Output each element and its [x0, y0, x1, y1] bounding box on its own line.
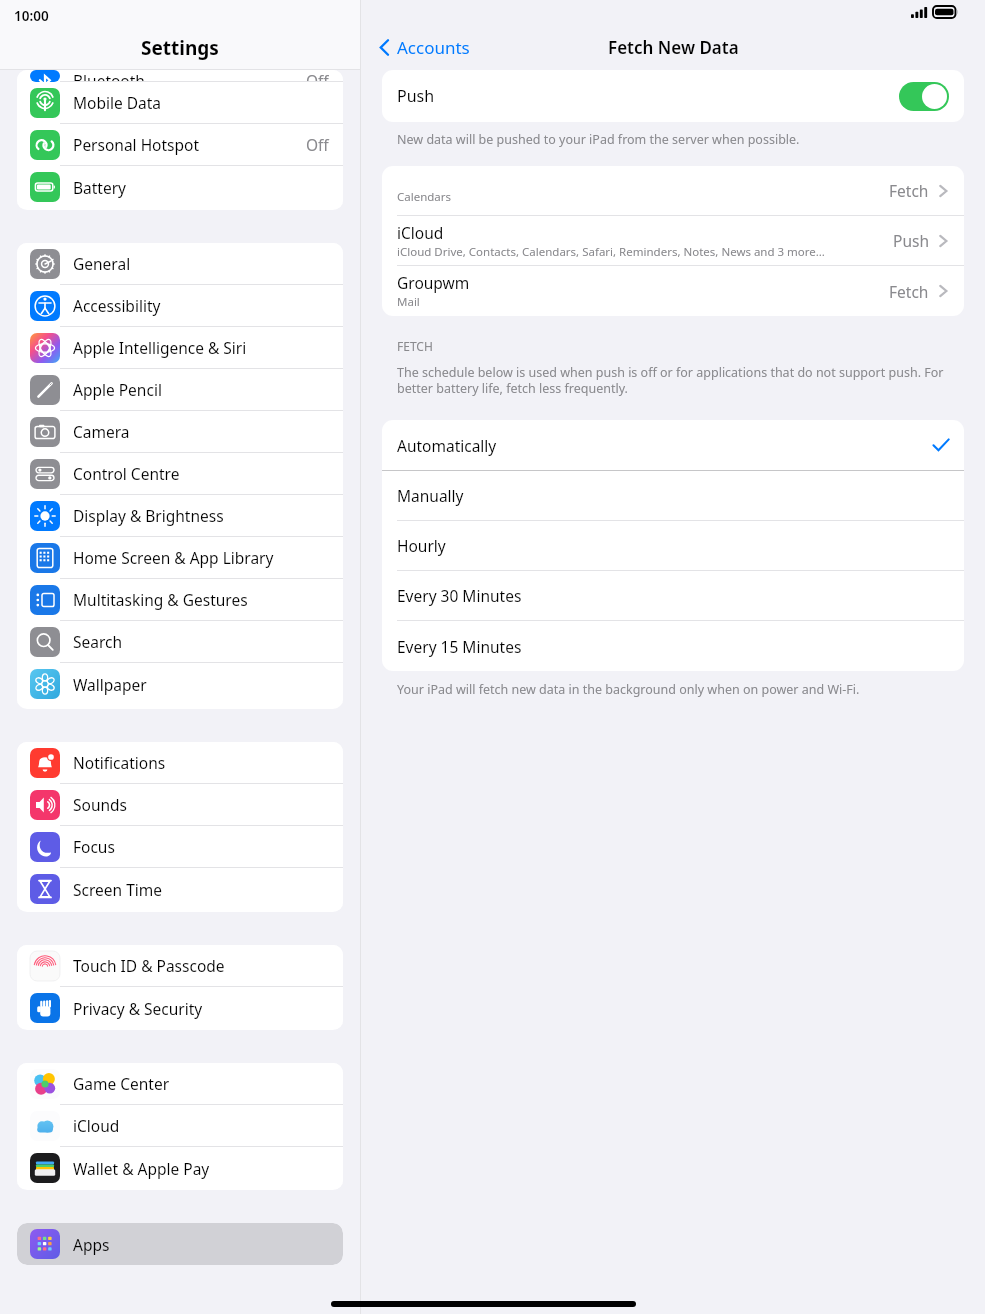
staticText: iCloud	[73, 1115, 343, 1136]
staticText: Notifications	[73, 752, 343, 773]
staticText: Touch ID & Passcode	[73, 955, 343, 976]
button[interactable]: iCloud	[17, 1105, 343, 1147]
button[interactable]: Privacy & Security	[17, 987, 343, 1029]
staticText: Display & Brightness	[73, 505, 343, 526]
button[interactable]: Wallet & Apple Pay	[17, 1147, 343, 1189]
staticText: Fetch New Data	[608, 36, 739, 59]
button[interactable]: Push toggle, on	[899, 82, 949, 111]
staticText: Off	[306, 134, 329, 155]
button[interactable]: Screen Time	[17, 868, 343, 910]
staticText: Wallpaper	[73, 674, 343, 695]
button[interactable]: Accessibility	[17, 285, 343, 327]
staticText: Apple Intelligence & Siri	[73, 337, 343, 358]
staticText: Game Center	[73, 1073, 343, 1094]
staticText: Push	[893, 230, 929, 251]
button[interactable]: Groupwm	[382, 266, 964, 316]
button[interactable]: Touch ID & Passcode	[17, 945, 343, 987]
staticText: Mobile Data	[73, 92, 343, 113]
staticText: Multitasking & Gestures	[73, 589, 343, 610]
button[interactable]: Push	[382, 70, 964, 122]
staticText: Screen Time	[73, 879, 343, 900]
staticText: Accessibility	[73, 295, 343, 316]
staticText: Push	[397, 85, 899, 107]
button[interactable]: Search	[17, 621, 343, 663]
button[interactable]: Automatically	[382, 420, 964, 470]
staticText: Focus	[73, 836, 343, 857]
staticText: General	[73, 253, 343, 274]
staticText: Every 15 Minutes	[397, 636, 950, 657]
staticText: Apps	[73, 1234, 343, 1255]
button[interactable]: Apps	[17, 1223, 343, 1265]
button[interactable]: Control Centre	[17, 453, 343, 495]
button[interactable]: Accounts	[375, 32, 474, 63]
staticText: The schedule below is used when push is …	[397, 364, 958, 397]
button[interactable]: Camera	[17, 411, 343, 453]
staticText: Mail	[397, 294, 420, 310]
staticText: Wallet & Apple Pay	[73, 1158, 343, 1179]
staticText: Settings	[141, 35, 219, 61]
button[interactable]: Calendars	[382, 166, 964, 216]
staticText: Fetch	[889, 180, 929, 201]
button[interactable]: Notifications	[17, 742, 343, 784]
staticText: Apple Pencil	[73, 379, 343, 400]
button[interactable]: Focus	[17, 826, 343, 868]
button[interactable]: Display & Brightness	[17, 495, 343, 537]
button[interactable]: Manually	[382, 471, 964, 521]
button[interactable]: Personal Hotspot	[17, 124, 343, 166]
staticText: Hourly	[397, 535, 950, 556]
button[interactable]: Every 30 Minutes	[382, 571, 964, 621]
staticText: Camera	[73, 421, 343, 442]
staticText: iCloud	[397, 222, 444, 243]
button[interactable]: Every 15 Minutes	[382, 621, 964, 671]
staticText: Your iPad will fetch new data in the bac…	[397, 681, 860, 698]
button[interactable]: Apple Intelligence & Siri	[17, 327, 343, 369]
button[interactable]: Battery	[17, 166, 343, 208]
staticText: Privacy & Security	[73, 998, 343, 1019]
staticText: FETCH	[397, 338, 433, 354]
staticText: Accounts	[397, 36, 470, 59]
staticText: 10:00	[14, 7, 49, 25]
staticText: Bluetooth	[73, 70, 306, 81]
button[interactable]: Wallpaper	[17, 663, 343, 705]
staticText: Sounds	[73, 794, 343, 815]
staticText: New data will be pushed to your iPad fro…	[397, 131, 800, 148]
button[interactable]: Home Screen & App Library	[17, 537, 343, 579]
button[interactable]: Bluetooth	[17, 70, 343, 82]
button[interactable]: Game Center	[17, 1063, 343, 1105]
button[interactable]: Multitasking & Gestures	[17, 579, 343, 621]
staticText: Home Screen & App Library	[73, 547, 343, 568]
staticText: Battery	[73, 177, 343, 198]
staticText: Manually	[397, 485, 950, 506]
staticText: Every 30 Minutes	[397, 585, 950, 606]
button[interactable]: iCloud	[382, 216, 964, 266]
staticText: Calendars	[397, 189, 452, 205]
staticText: Automatically	[397, 435, 932, 456]
staticText: iCloud Drive, Contacts, Calendars, Safar…	[397, 244, 825, 260]
staticText: Personal Hotspot	[73, 134, 306, 155]
button[interactable]: Mobile Data	[17, 82, 343, 124]
button[interactable]: Hourly	[382, 521, 964, 571]
staticText: Groupwm	[397, 272, 470, 293]
button[interactable]: General	[17, 243, 343, 285]
staticText: Search	[73, 631, 343, 652]
button[interactable]: Apple Pencil	[17, 369, 343, 411]
staticText: Off	[306, 70, 329, 81]
button[interactable]: Sounds	[17, 784, 343, 826]
staticText: Control Centre	[73, 463, 343, 484]
staticText: Fetch	[889, 281, 929, 302]
